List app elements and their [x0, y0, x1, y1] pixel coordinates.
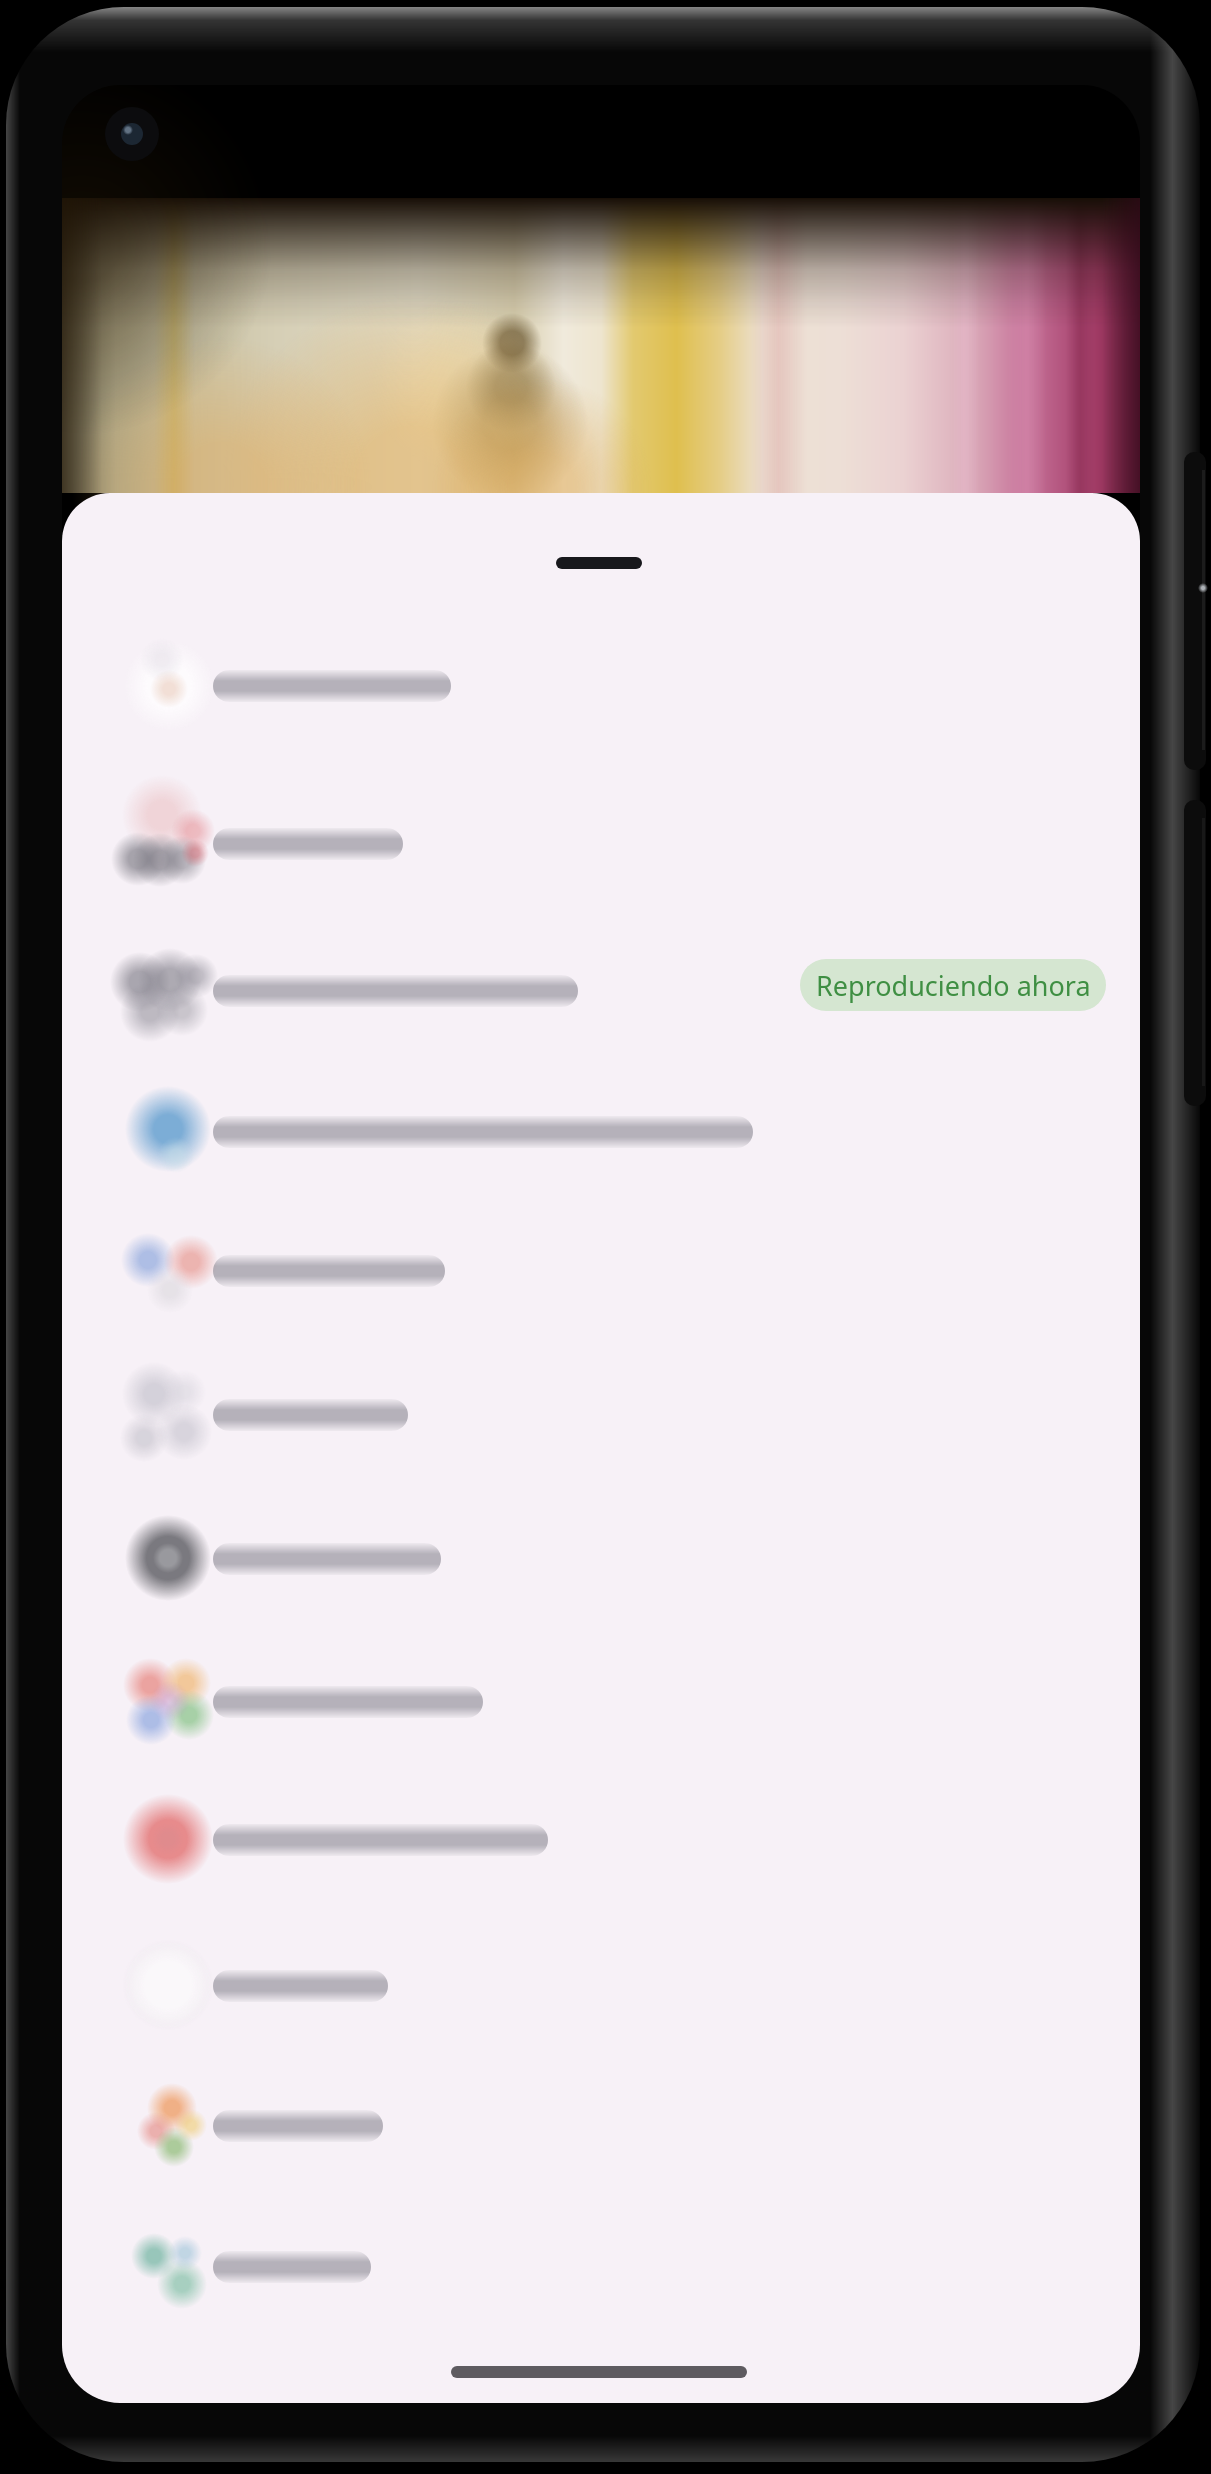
staticText: Reproduciendo ahora	[816, 967, 1091, 1004]
button[interactable]	[92, 1061, 1110, 1203]
button[interactable]	[92, 1631, 1110, 1773]
button[interactable]	[92, 1769, 1110, 1911]
button[interactable]	[92, 1200, 1110, 1342]
button[interactable]	[92, 920, 1110, 1062]
button[interactable]	[92, 773, 1110, 915]
button[interactable]	[92, 615, 1110, 757]
button[interactable]: Reproduciendo ahora	[800, 959, 1106, 1011]
button[interactable]	[92, 2196, 1110, 2338]
button[interactable]	[92, 1344, 1110, 1486]
button[interactable]	[92, 2055, 1110, 2197]
button[interactable]	[451, 2366, 747, 2378]
button[interactable]	[92, 1488, 1110, 1630]
button[interactable]	[92, 1915, 1110, 2057]
button[interactable]	[556, 557, 642, 569]
